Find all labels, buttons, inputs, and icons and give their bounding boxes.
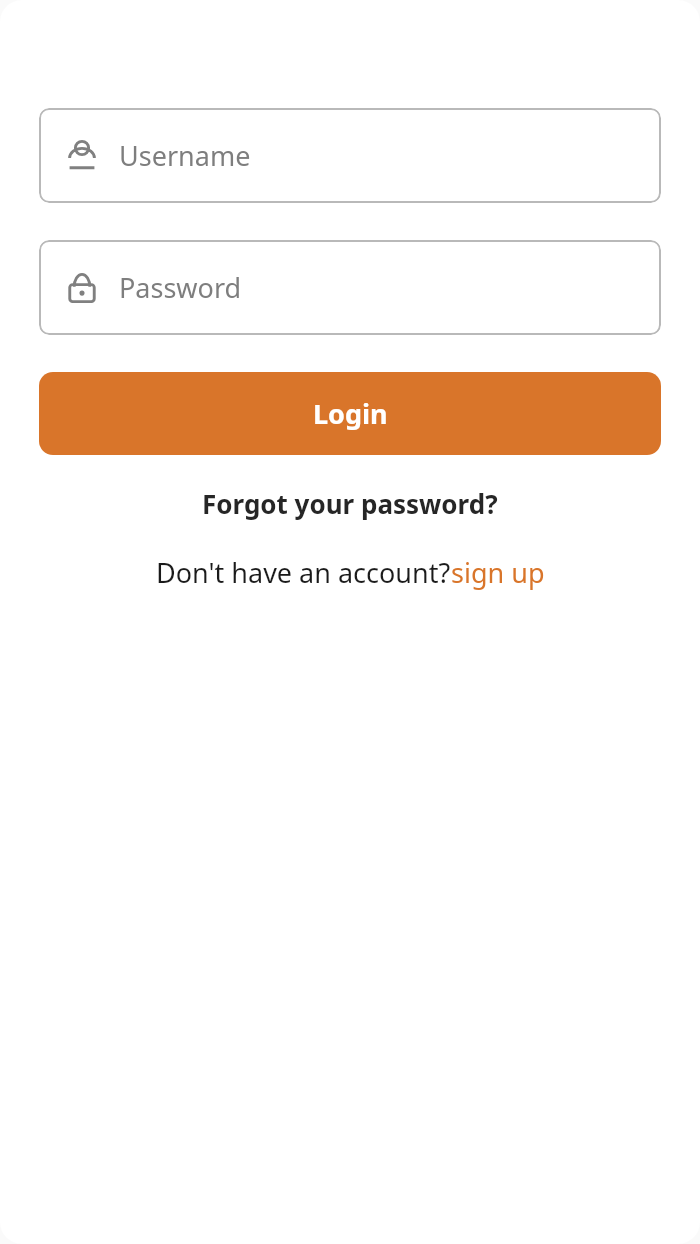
button[interactable]: Login — [39, 372, 661, 455]
other: Password — [65, 271, 99, 305]
staticText: sign up — [451, 554, 545, 591]
other: Username — [65, 139, 99, 173]
button[interactable]: Forgot your password? — [194, 482, 506, 525]
button[interactable]: Username — [39, 108, 661, 203]
button[interactable]: Password — [39, 240, 661, 335]
staticText: Username — [119, 137, 251, 174]
staticText: Login — [313, 395, 388, 432]
staticText: Forgot your password? — [202, 486, 498, 521]
staticText: Don't have an account? — [156, 554, 451, 591]
button[interactable]: sign up — [451, 554, 545, 591]
staticText: Password — [119, 269, 242, 306]
